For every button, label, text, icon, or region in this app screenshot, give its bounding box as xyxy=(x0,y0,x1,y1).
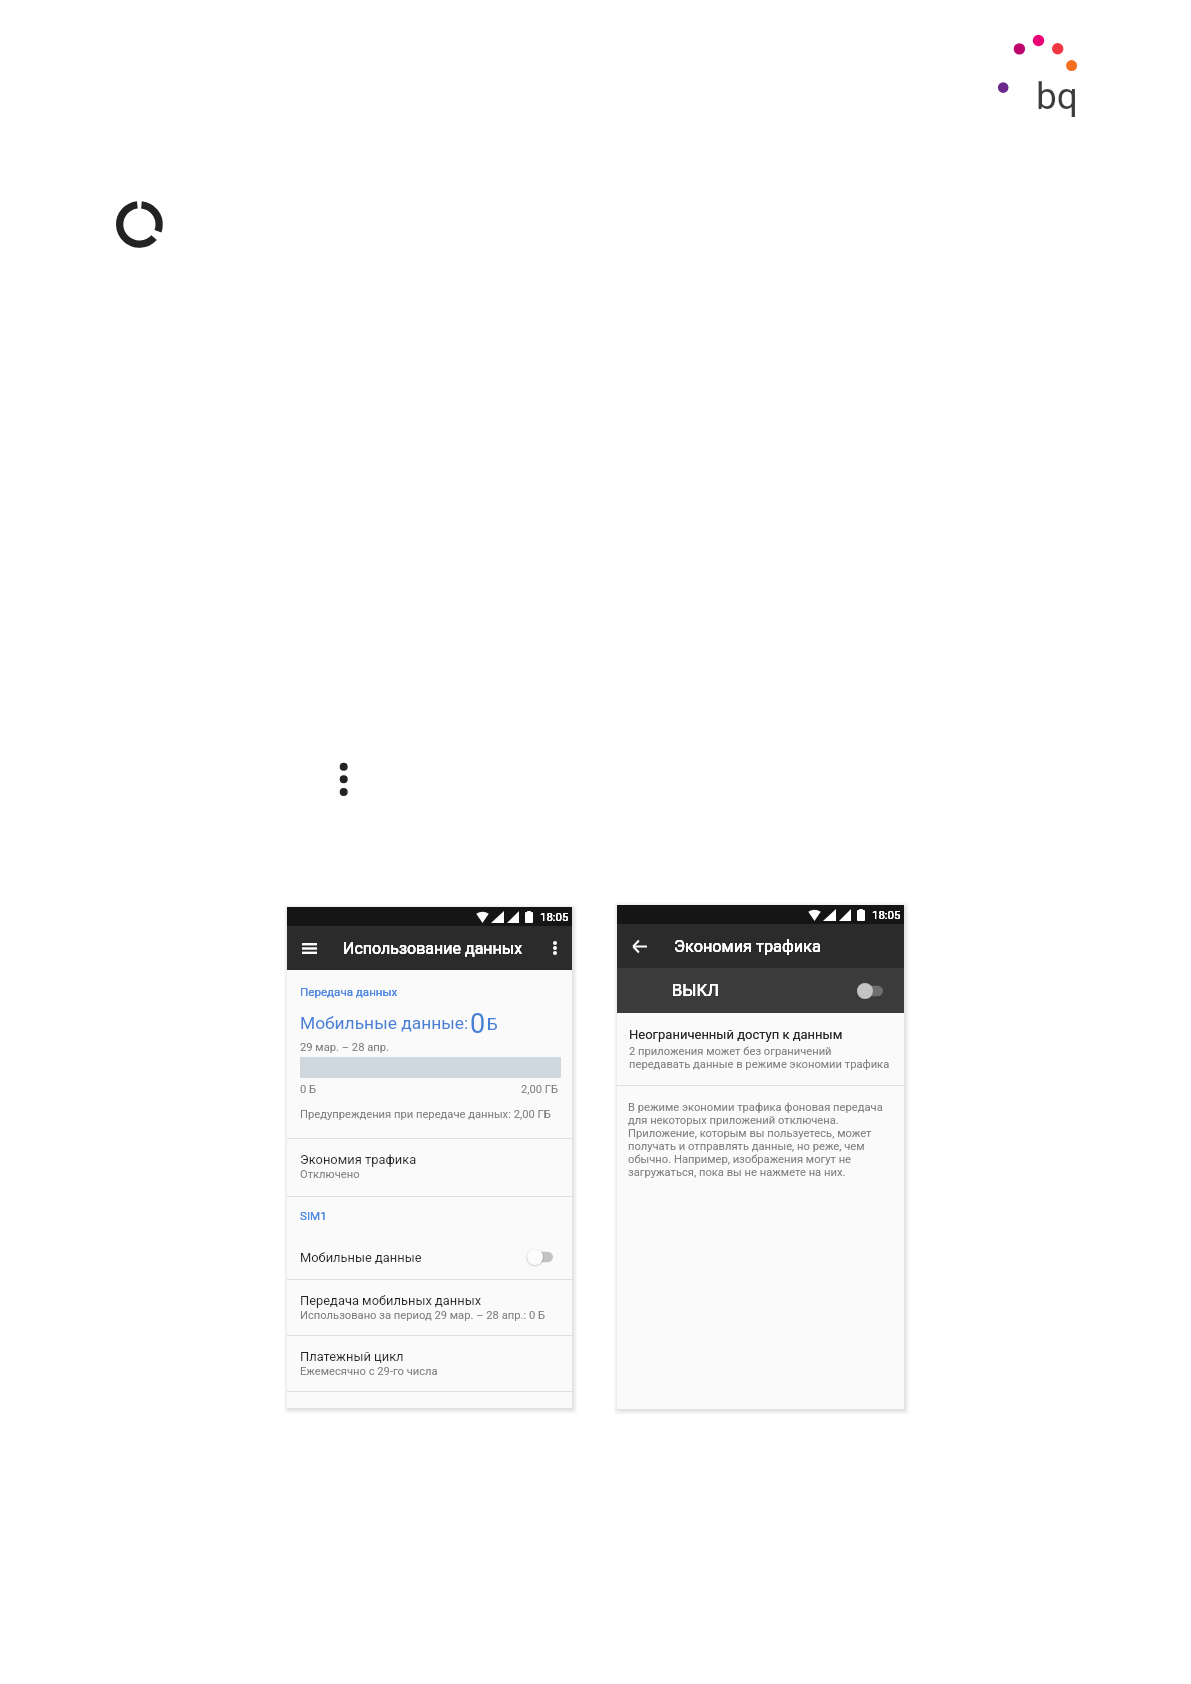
staticText: SIM1 xyxy=(300,1209,327,1223)
other: More options xyxy=(335,762,355,802)
button[interactable]: Платежный цикл xyxy=(287,1336,572,1391)
staticText: Использование данных xyxy=(343,939,523,958)
button[interactable]: Экономия трафика xyxy=(287,1139,572,1196)
button[interactable]: Передача мобильных данных xyxy=(287,1280,572,1335)
staticText: 18:05 xyxy=(540,910,569,923)
staticText: ВЫКЛ xyxy=(672,981,719,1000)
button[interactable]: Back xyxy=(617,924,661,968)
button[interactable]: Мобильные данные xyxy=(287,1235,572,1279)
staticText: Использование данных xyxy=(343,939,523,958)
staticText: Использовано за период 29 мар. – 28 апр.… xyxy=(300,1309,546,1322)
button[interactable]: More options xyxy=(538,931,572,965)
staticText: 18:05 xyxy=(872,908,901,921)
staticText: Экономия трафика xyxy=(674,937,821,956)
staticText: ВЫКЛ xyxy=(672,981,719,1000)
button[interactable]: Menu xyxy=(287,926,331,970)
staticText: 29 мар. – 28 апр. xyxy=(300,1041,389,1054)
staticText: Платежный цикл xyxy=(300,1349,404,1364)
staticText: 0 xyxy=(470,1008,486,1040)
staticText: Мобильные данные: xyxy=(300,1013,469,1033)
staticText: Передача мобильных данных xyxy=(300,1293,482,1308)
staticText: Неограниченный доступ к данным xyxy=(629,1027,843,1042)
button[interactable]: Toggle xyxy=(525,1246,555,1268)
staticText: SIM1 xyxy=(300,1209,327,1223)
staticText: Отключено xyxy=(300,1168,360,1181)
other: Data usage xyxy=(116,201,166,251)
staticText: 2 приложения может без ограничений перед… xyxy=(629,1045,890,1071)
staticText: Передача данных xyxy=(300,985,398,999)
button[interactable]: ВЫКЛ xyxy=(617,968,904,1013)
staticText: Экономия трафика xyxy=(674,937,821,956)
staticText: В режиме экономии трафика фоновая переда… xyxy=(628,1101,883,1179)
staticText: 18:05 xyxy=(872,908,901,921)
staticText: Передача данных xyxy=(300,985,398,999)
staticText: 0 Б xyxy=(300,1083,317,1096)
button[interactable]: Toggle xyxy=(855,980,885,1002)
button[interactable]: Неограниченный доступ к данным xyxy=(617,1013,904,1085)
staticText: 18:05 xyxy=(540,910,569,923)
staticText: 2,00 ГБ xyxy=(521,1083,559,1096)
staticText: Экономия трафика xyxy=(300,1152,417,1167)
staticText: Ежемесячно с 29-го числа xyxy=(300,1365,438,1378)
staticText: Предупреждения при передаче данных: 2,00… xyxy=(300,1108,551,1121)
staticText: Б xyxy=(487,1014,498,1034)
staticText: Мобильные данные xyxy=(300,1250,422,1265)
staticText: bq xyxy=(1036,75,1078,118)
staticText: Неограниченный доступ к данным xyxy=(629,1027,843,1042)
